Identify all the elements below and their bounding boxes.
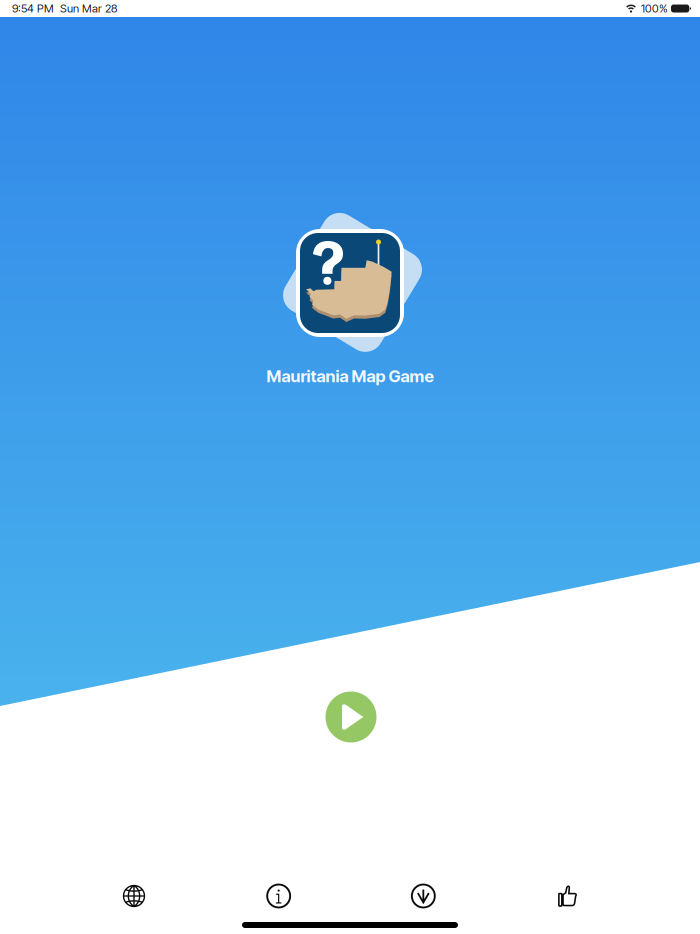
staticText: 9:54 PM — [12, 2, 54, 15]
staticText: 100% — [641, 2, 668, 15]
button[interactable]: Change language — [112, 874, 156, 918]
button[interactable]: Rate this app — [546, 874, 590, 918]
button[interactable]: Play — [319, 685, 383, 749]
button[interactable]: Information — [257, 874, 301, 918]
staticText: Sun Mar 28 — [60, 2, 117, 15]
button[interactable]: Download more games — [401, 874, 445, 918]
staticText: Mauritania Map Game — [266, 366, 433, 386]
